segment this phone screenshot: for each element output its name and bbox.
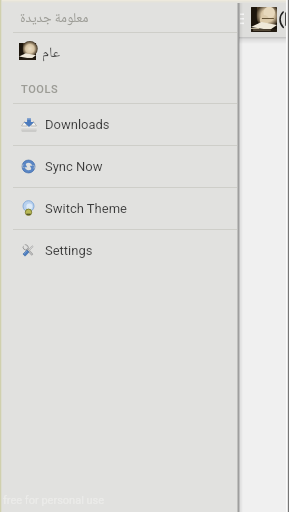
button[interactable]: عام: [0, 33, 238, 70]
staticText: معلومة جديدة: [20, 10, 89, 28]
staticText: Downloads: [45, 117, 110, 132]
staticText: عام: [42, 43, 61, 63]
button[interactable]: Sync Now: [0, 146, 238, 187]
staticText: TOOLS: [21, 83, 59, 96]
staticText: Settings: [45, 243, 93, 258]
button[interactable]: Settings: [0, 230, 238, 271]
button[interactable]: Switch Theme: [0, 188, 238, 229]
button[interactable]: Downloads: [0, 104, 238, 145]
staticText: Sync Now: [45, 159, 103, 174]
staticText: Switch Theme: [45, 201, 127, 216]
button[interactable]: Open navigation drawer: [235, 0, 249, 37]
staticText: free for personal use: [3, 494, 105, 507]
